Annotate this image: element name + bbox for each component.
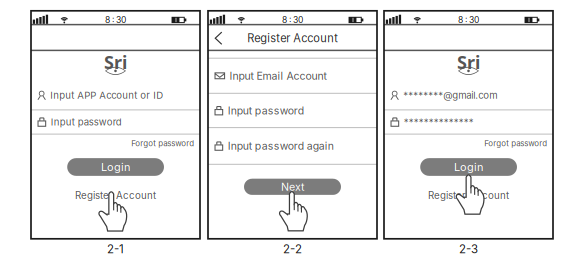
button[interactable]: Forgot password — [131, 138, 194, 149]
staticText: Login — [101, 160, 130, 174]
staticText: Sri — [457, 50, 480, 74]
staticText: Next — [281, 180, 304, 193]
button[interactable]: Login — [420, 158, 517, 176]
staticText: Input password again — [228, 140, 334, 152]
staticText: Sri — [104, 50, 127, 74]
button[interactable]: Input password again — [208, 129, 377, 163]
button[interactable]: Register Account — [428, 189, 509, 201]
staticText: Input Email Account — [230, 69, 327, 82]
staticText: 2-1 — [107, 242, 124, 256]
staticText: 8 : 30 — [105, 15, 126, 25]
button[interactable]: Register Account — [75, 189, 156, 201]
staticText: ************** — [404, 116, 474, 128]
staticText: 8 : 30 — [458, 15, 479, 25]
button[interactable]: Back — [207, 26, 229, 50]
staticText: Input password — [51, 116, 122, 128]
staticText: Register Account — [75, 189, 156, 201]
button[interactable]: Forgot password — [484, 138, 547, 149]
staticText: Forgot password — [131, 138, 194, 148]
staticText: Login — [454, 160, 483, 174]
staticText: Input password — [228, 104, 304, 117]
button[interactable]: Input APP Account or ID — [31, 83, 200, 107]
staticText: 2-2 — [283, 242, 302, 256]
staticText: 8 : 30 — [282, 15, 303, 25]
staticText: ********@gmail.com — [403, 89, 497, 101]
staticText: 2-3 — [459, 242, 478, 256]
button[interactable]: Input password — [208, 94, 377, 128]
button[interactable]: Input password — [31, 110, 200, 134]
button[interactable]: ************** — [384, 110, 553, 134]
button[interactable]: Next — [244, 179, 341, 195]
staticText: Forgot password — [484, 138, 547, 148]
button[interactable]: Login — [67, 158, 164, 176]
staticText: Register Account — [428, 189, 509, 201]
button[interactable]: Input Email Account — [208, 59, 377, 93]
staticText: Register Account — [247, 31, 338, 45]
button[interactable]: ********@gmail.com — [384, 83, 553, 107]
staticText: Input APP Account or ID — [50, 89, 163, 101]
